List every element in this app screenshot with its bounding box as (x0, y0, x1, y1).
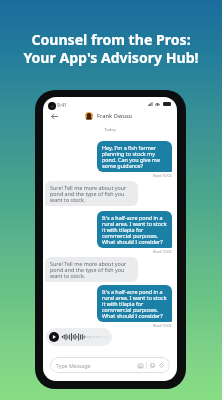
staticText: It's a half-acre pond in a rural area. I… (102, 288, 167, 319)
staticText: Read 10:02 (153, 173, 172, 178)
staticText: Type Message (56, 362, 91, 369)
button[interactable]: Sure! Tell me more about your pond and t… (45, 257, 138, 282)
button[interactable]: Hey, I'm a fish farmer planning to stock… (97, 141, 172, 172)
button[interactable]: Type Message (50, 357, 170, 373)
staticText: 9:41 (57, 102, 67, 109)
button[interactable]: Sure! Tell me more about your pond and t… (45, 181, 138, 206)
staticText: Sure! Tell me more about your pond and t… (50, 260, 133, 279)
staticText: Today (43, 127, 177, 133)
button[interactable]: It's a half-acre pond in a rural area. I… (97, 285, 172, 322)
other: Record voice (159, 363, 164, 368)
staticText: Hey, I'm a fish farmer planning to stock… (102, 144, 167, 169)
staticText: Counsel from the Pros: Your App's Adviso… (0, 30, 222, 67)
other: Play voice message (49, 332, 59, 342)
staticText: Read 10:02 (153, 323, 172, 328)
button[interactable]: Back (49, 111, 59, 121)
staticText: Frank Owusu (97, 112, 133, 120)
other: Attach image (138, 364, 143, 368)
staticText: Sure! Tell me more about your pond and t… (50, 184, 133, 203)
staticText: Read 10:02 (153, 249, 172, 254)
button[interactable]: Play voice message (46, 328, 112, 346)
staticText: It's a half-acre pond in a rural area. I… (102, 214, 167, 245)
button[interactable]: It's a half-acre pond in a rural area. I… (97, 211, 172, 248)
other: Emoji (150, 363, 155, 368)
